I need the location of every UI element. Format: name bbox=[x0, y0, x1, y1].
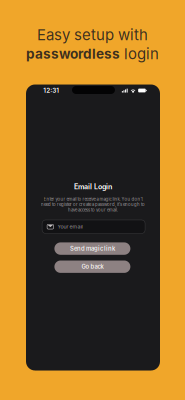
staticText: Send magic link bbox=[70, 245, 115, 252]
staticText: passwordless bbox=[26, 46, 120, 62]
staticText: Email Login bbox=[74, 182, 112, 191]
staticText: 12:31 bbox=[43, 87, 59, 94]
staticText: Enter your email to receive a magic link… bbox=[43, 197, 142, 202]
button[interactable]: Send magic link bbox=[54, 242, 130, 255]
staticText: Go back bbox=[81, 263, 103, 270]
staticText: Easy setup with bbox=[37, 26, 148, 44]
staticText: login bbox=[124, 45, 159, 63]
staticText: Your email bbox=[57, 224, 82, 230]
button[interactable]: Go back bbox=[54, 260, 130, 273]
staticText: have access to your email. bbox=[68, 207, 118, 212]
staticText: need to register or create a password, i… bbox=[41, 202, 145, 207]
